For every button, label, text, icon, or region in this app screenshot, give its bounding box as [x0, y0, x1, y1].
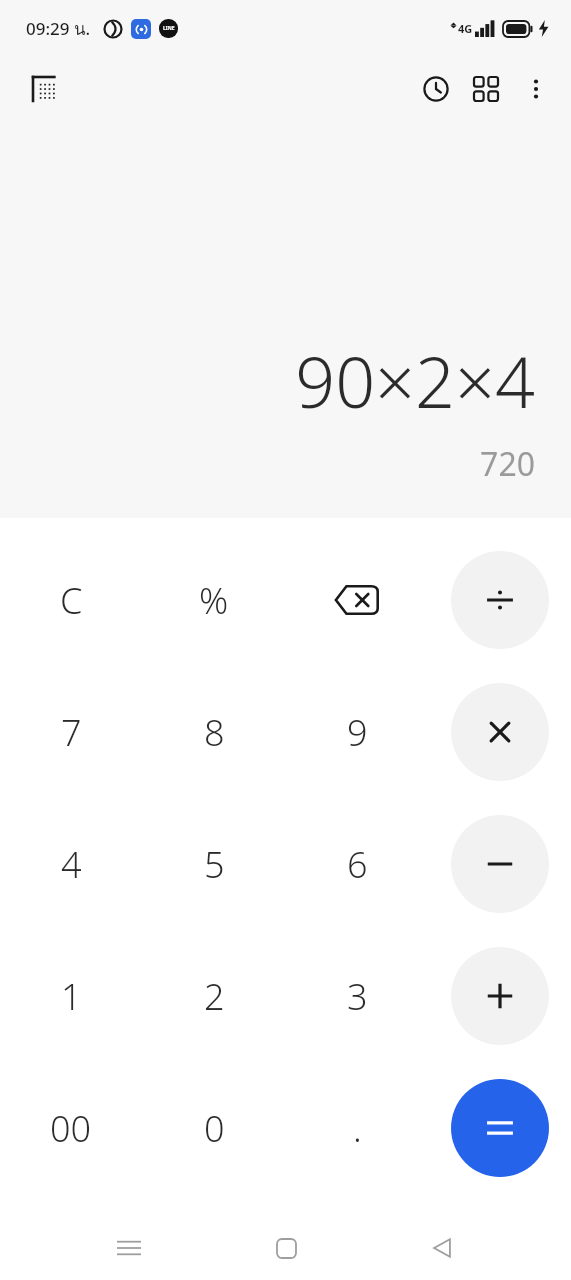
- staticText: .: [353, 1104, 362, 1153]
- button[interactable]: .: [308, 1079, 406, 1177]
- button[interactable]: C: [22, 551, 120, 649]
- button[interactable]: Screenshot region: [22, 66, 68, 112]
- button[interactable]: Multiply: [451, 683, 549, 781]
- button[interactable]: 00: [22, 1079, 120, 1177]
- button[interactable]: 1: [22, 947, 120, 1045]
- button[interactable]: %: [165, 551, 263, 649]
- button[interactable]: Subtract: [451, 815, 549, 913]
- button[interactable]: More options: [511, 64, 561, 114]
- button[interactable]: 8: [165, 683, 263, 781]
- button[interactable]: Equals: [451, 1079, 549, 1177]
- staticText: 4: [61, 840, 82, 889]
- button[interactable]: 7: [22, 683, 120, 781]
- staticText: 8: [204, 708, 225, 757]
- staticText: 5: [204, 840, 225, 889]
- staticText: 90×2×4: [24, 333, 535, 428]
- staticText: LINE: [163, 25, 175, 32]
- staticText: 0: [204, 1104, 225, 1153]
- button[interactable]: Backspace: [308, 551, 406, 649]
- button[interactable]: Add: [451, 947, 549, 1045]
- button[interactable]: Back: [414, 1220, 470, 1276]
- button[interactable]: 5: [165, 815, 263, 913]
- staticText: 7: [61, 708, 82, 757]
- staticText: 3: [347, 972, 368, 1021]
- button[interactable]: Home: [258, 1220, 314, 1276]
- staticText: 1: [61, 972, 82, 1021]
- button[interactable]: 2: [165, 947, 263, 1045]
- button[interactable]: 4: [22, 815, 120, 913]
- staticText: 720: [24, 442, 535, 486]
- staticText: 4G: [458, 21, 473, 36]
- button[interactable]: History: [411, 64, 461, 114]
- staticText: 00: [50, 1104, 92, 1153]
- staticText: %: [199, 576, 229, 625]
- button[interactable]: Calculator modes: [461, 64, 511, 114]
- staticText: 09:29 น.: [26, 15, 91, 42]
- button[interactable]: Divide: [451, 551, 549, 649]
- button[interactable]: Recent apps: [101, 1220, 157, 1276]
- button[interactable]: 0: [165, 1079, 263, 1177]
- staticText: 6: [347, 840, 368, 889]
- button[interactable]: 3: [308, 947, 406, 1045]
- staticText: 9: [347, 708, 368, 757]
- button[interactable]: 6: [308, 815, 406, 913]
- staticText: C: [60, 576, 83, 625]
- staticText: 2: [204, 972, 225, 1021]
- button[interactable]: 9: [308, 683, 406, 781]
